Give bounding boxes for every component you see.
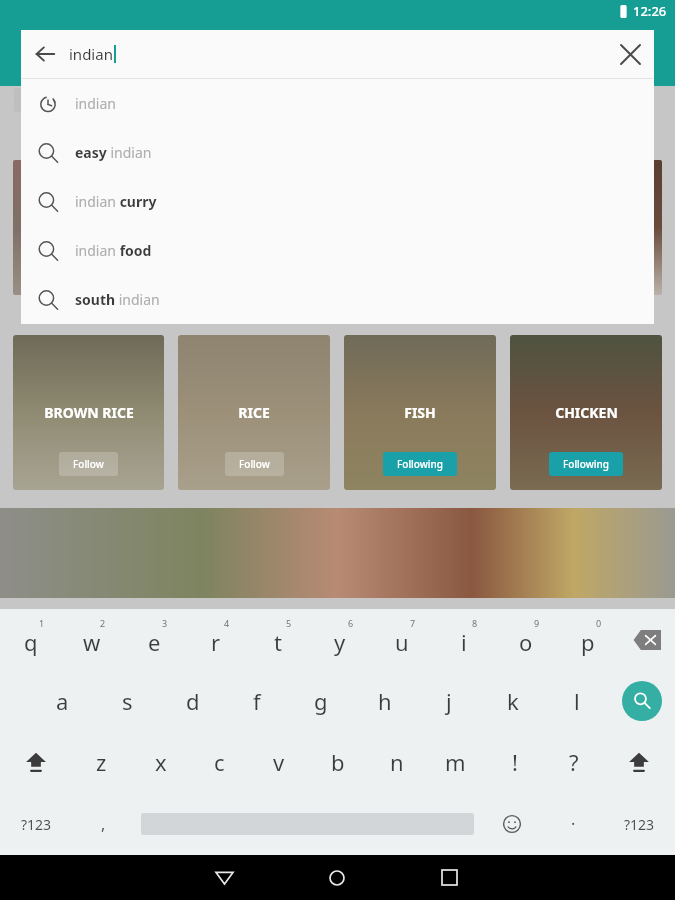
staticText: t xyxy=(274,627,282,657)
button[interactable]: BROWN RICE xyxy=(13,335,164,490)
button[interactable]: south indian xyxy=(21,275,654,324)
staticText: y xyxy=(334,627,346,657)
button[interactable]: 5 xyxy=(247,609,309,670)
staticText: s xyxy=(122,686,133,716)
button[interactable]: h xyxy=(353,670,417,731)
staticText: n xyxy=(390,747,404,777)
button[interactable]: Shift xyxy=(603,731,675,793)
button[interactable]: 7 xyxy=(371,609,433,670)
button[interactable]: Shift xyxy=(0,731,72,793)
staticText: d xyxy=(186,686,200,716)
button[interactable]: a xyxy=(30,670,95,731)
button[interactable]: 6 xyxy=(309,609,371,670)
staticText: CHICKEN xyxy=(555,403,618,422)
button[interactable]: Back xyxy=(21,30,69,78)
button[interactable]: 1 xyxy=(0,609,61,670)
staticText: ?123 xyxy=(624,815,655,834)
button[interactable]: Backspace xyxy=(619,609,675,670)
button[interactable]: , xyxy=(72,793,134,855)
button[interactable]: 9 xyxy=(495,609,557,670)
button[interactable]: ? xyxy=(544,731,603,793)
button[interactable]: s xyxy=(95,670,160,731)
staticText: z xyxy=(96,747,107,777)
staticText: a xyxy=(56,686,69,716)
staticText: ?123 xyxy=(21,815,52,834)
staticText: 9 xyxy=(534,617,540,629)
button[interactable]: 4 xyxy=(185,609,247,670)
staticText: l xyxy=(574,686,580,716)
button[interactable]: Following xyxy=(563,457,609,471)
button[interactable]: l xyxy=(545,670,609,731)
staticText: Following xyxy=(397,457,443,471)
staticText: indian food xyxy=(75,241,152,260)
staticText: 12:26 xyxy=(633,2,667,20)
button[interactable]: Home xyxy=(280,855,393,900)
button[interactable]: 3 xyxy=(123,609,185,670)
staticText: indian curry xyxy=(75,192,157,211)
button[interactable]: FISH xyxy=(344,335,496,490)
button[interactable]: indian curry xyxy=(21,177,654,226)
button[interactable]: Recents xyxy=(393,855,506,900)
staticText: 3 xyxy=(162,617,168,629)
staticText: o xyxy=(519,627,533,657)
staticText: 6 xyxy=(348,617,354,629)
button[interactable]: Back xyxy=(168,855,280,900)
staticText: · xyxy=(571,813,576,835)
staticText: indian xyxy=(69,44,113,64)
button[interactable]: m xyxy=(426,731,485,793)
button[interactable]: ?123 xyxy=(0,793,72,855)
button[interactable]: Following xyxy=(397,457,443,471)
staticText: j xyxy=(446,686,452,716)
staticText: g xyxy=(314,686,328,716)
button[interactable]: d xyxy=(160,670,225,731)
staticText: FISH xyxy=(404,403,436,422)
button[interactable]: g xyxy=(289,670,353,731)
button[interactable]: 0 xyxy=(557,609,619,670)
staticText: ? xyxy=(569,747,579,777)
button[interactable]: x xyxy=(131,731,190,793)
button[interactable]: easy indian xyxy=(21,128,654,177)
staticText: m xyxy=(445,747,466,777)
staticText: 2 xyxy=(100,617,106,629)
button[interactable]: v xyxy=(249,731,308,793)
button[interactable]: 2 xyxy=(61,609,123,670)
staticText: 7 xyxy=(410,617,416,629)
button[interactable]: ! xyxy=(485,731,544,793)
button[interactable]: Emoji xyxy=(481,793,543,855)
button[interactable]: Follow xyxy=(73,457,104,471)
button[interactable]: f xyxy=(225,670,289,731)
button[interactable]: Follow xyxy=(239,457,270,471)
staticText: easy indian xyxy=(75,143,152,162)
staticText: c xyxy=(214,747,225,777)
button[interactable]: c xyxy=(190,731,249,793)
button[interactable]: 8 xyxy=(433,609,495,670)
staticText: q xyxy=(24,627,38,657)
button[interactable]: ?123 xyxy=(603,793,675,855)
button[interactable]: Clear xyxy=(606,30,654,78)
staticText: f xyxy=(253,686,261,716)
staticText: Follow xyxy=(73,457,104,471)
staticText: , xyxy=(101,813,106,835)
button[interactable]: j xyxy=(417,670,481,731)
staticText: BROWN RICE xyxy=(44,403,134,422)
staticText: h xyxy=(378,686,392,716)
button[interactable]: n xyxy=(367,731,426,793)
staticText: p xyxy=(581,627,595,657)
button[interactable]: Search xyxy=(609,670,675,731)
staticText: 8 xyxy=(472,617,478,629)
button[interactable]: k xyxy=(481,670,545,731)
staticText: Follow xyxy=(239,457,270,471)
button[interactable]: RICE xyxy=(178,335,330,490)
staticText: b xyxy=(331,747,345,777)
button[interactable]: · xyxy=(543,793,603,855)
button[interactable]: b xyxy=(308,731,367,793)
button[interactable]: CHICKEN xyxy=(510,335,662,490)
button[interactable]: z xyxy=(72,731,131,793)
button[interactable]: indian xyxy=(21,79,654,128)
button[interactable]: Space xyxy=(134,793,481,855)
button[interactable]: indian food xyxy=(21,226,654,275)
staticText: u xyxy=(395,627,409,657)
staticText: south indian xyxy=(75,290,160,309)
staticText: Following xyxy=(563,457,609,471)
